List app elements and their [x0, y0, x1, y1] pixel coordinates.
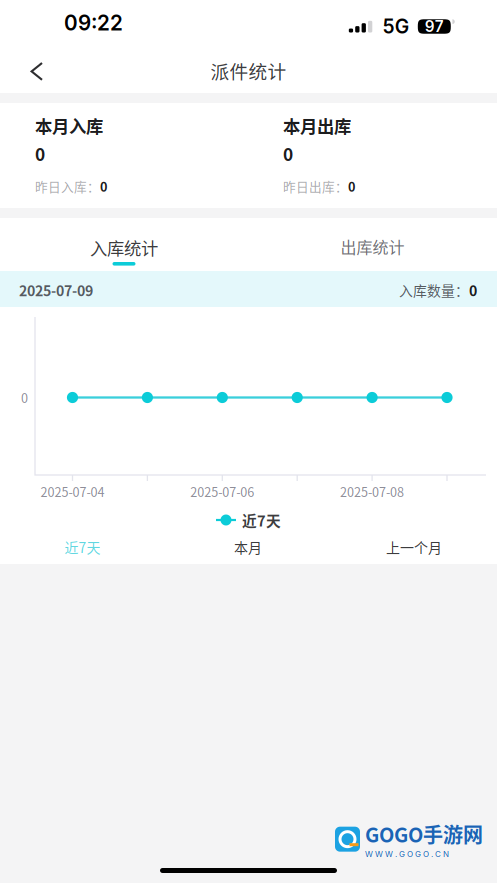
- staticText: 2025-07-06: [190, 482, 254, 501]
- staticText: 2025-07-04: [40, 482, 104, 501]
- staticText: 0: [469, 280, 477, 300]
- staticText: 5G: [383, 15, 409, 38]
- staticText: 97: [425, 17, 444, 36]
- staticText: 本月入库: [35, 113, 103, 138]
- staticText: 入库数量：: [399, 280, 469, 300]
- staticText: 近7天: [242, 509, 281, 531]
- staticText: 0: [348, 177, 355, 195]
- button[interactable]: 近7天: [0, 530, 165, 564]
- staticText: 出库统计: [340, 235, 404, 258]
- staticText: 入库统计: [90, 235, 158, 260]
- staticText: 0: [100, 177, 107, 195]
- staticText: W W W . G O G O . C N: [365, 849, 449, 859]
- staticText: 昨日入库：: [35, 177, 100, 195]
- staticText: 派件统计: [210, 57, 286, 84]
- button[interactable]: 本月: [165, 530, 331, 564]
- staticText: 本月: [234, 537, 262, 557]
- button[interactable]: Back: [0, 48, 65, 93]
- staticText: GOGO手游网: [365, 819, 483, 848]
- staticText: 0: [21, 388, 28, 407]
- staticText: 昨日出库：: [283, 177, 348, 195]
- button[interactable]: 上一个月: [331, 530, 497, 564]
- staticText: 本月出库: [283, 113, 351, 138]
- button[interactable]: 出库统计: [248, 218, 497, 271]
- staticText: 2025-07-09: [19, 280, 93, 300]
- staticText: 上一个月: [386, 537, 442, 557]
- staticText: 0: [283, 141, 293, 166]
- staticText: 近7天: [64, 537, 100, 557]
- staticText: 0: [35, 141, 45, 166]
- staticText: 2025-07-08: [340, 482, 404, 501]
- button[interactable]: 入库统计: [0, 218, 248, 271]
- staticText: 09:22: [64, 10, 123, 35]
